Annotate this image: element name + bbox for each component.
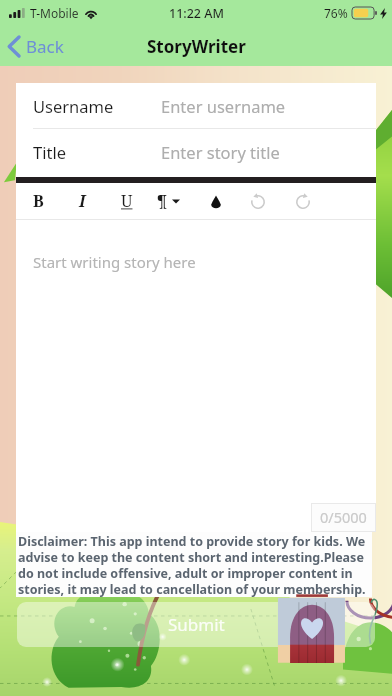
staticText: ¶: [157, 190, 168, 212]
staticText: B: [33, 190, 44, 212]
button[interactable]: Text colour: [204, 189, 228, 213]
button[interactable]: Undo: [246, 189, 270, 213]
staticText: I: [79, 190, 86, 212]
button[interactable]: Back: [0, 35, 118, 58]
staticText: Enter story title: [161, 141, 280, 163]
staticText: Title: [33, 141, 66, 163]
staticText: Enter username: [161, 95, 286, 117]
button[interactable]: ¶: [157, 189, 180, 213]
staticText: StoryWriter: [147, 35, 246, 58]
button[interactable]: U: [115, 189, 139, 213]
staticText: 11:22 AM: [169, 5, 224, 22]
staticText: T-Mobile: [30, 5, 79, 21]
staticText: Disclaimer: This app intend to provide s…: [18, 533, 372, 597]
staticText: Submit: [168, 613, 225, 636]
staticText: 0/5000: [320, 507, 367, 527]
button[interactable]: Submit: [17, 602, 375, 647]
button[interactable]: B: [26, 189, 50, 213]
button[interactable]: Title: [16, 129, 376, 174]
staticText: Username: [33, 95, 114, 117]
staticText: U: [121, 190, 133, 212]
staticText: Back: [26, 35, 64, 58]
staticText: 76%: [324, 5, 348, 21]
button[interactable]: I: [70, 189, 94, 213]
button[interactable]: Username: [16, 83, 376, 128]
staticText: Start writing story here: [33, 252, 196, 272]
button[interactable]: Redo: [291, 189, 315, 213]
